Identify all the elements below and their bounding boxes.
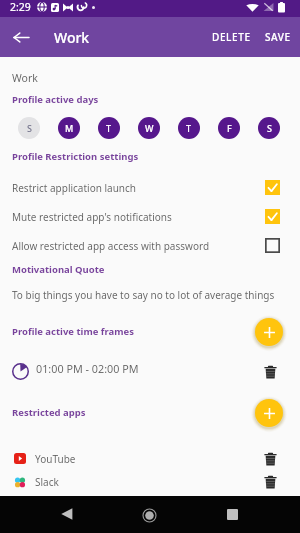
button[interactable]: SAVE xyxy=(258,20,300,54)
button[interactable]: DELETE xyxy=(205,20,258,54)
button[interactable]: S xyxy=(18,117,40,139)
button[interactable]: T xyxy=(178,117,200,139)
staticText: F xyxy=(227,122,232,134)
staticText: 01:00 PM - 02:00 PM xyxy=(36,361,139,376)
staticText: M xyxy=(65,122,74,134)
staticText: S xyxy=(27,122,32,134)
staticText: To big things you have to say no to lot … xyxy=(12,288,275,302)
button[interactable]: YouTube xyxy=(0,444,300,473)
button[interactable]: Add xyxy=(255,399,283,427)
staticText: Profile Restriction settings xyxy=(12,150,139,163)
staticText: Mute restricted app's notifications xyxy=(12,210,265,224)
button[interactable]: F xyxy=(218,117,240,139)
staticText: Restricted apps xyxy=(12,406,86,419)
button[interactable]: M xyxy=(58,117,80,139)
staticText: Profile active days xyxy=(12,93,99,106)
button[interactable]: Remove Slack xyxy=(259,473,281,490)
staticText: 2:29 xyxy=(10,0,31,14)
button[interactable]: Add xyxy=(255,318,283,346)
staticText: Allow restricted app access with passwor… xyxy=(12,239,265,253)
staticText: Motivational Quote xyxy=(12,263,105,276)
staticText: Work xyxy=(12,71,38,85)
staticText: SAVE xyxy=(265,30,291,44)
button[interactable]: Recent apps xyxy=(216,498,248,530)
button[interactable]: S xyxy=(258,117,280,139)
staticText: T xyxy=(106,122,112,134)
button[interactable]: W xyxy=(138,117,160,139)
button[interactable]: Back xyxy=(51,498,83,530)
button[interactable]: Mute restricted app's notifications xyxy=(0,202,300,231)
button[interactable]: Delete time frame xyxy=(259,361,281,383)
staticText: Profile active time frames xyxy=(12,325,134,338)
button[interactable]: T xyxy=(98,117,120,139)
staticText: YouTube xyxy=(35,452,76,466)
button[interactable]: Slack xyxy=(0,473,300,490)
button[interactable]: Back xyxy=(3,19,39,55)
button[interactable]: Home xyxy=(133,499,165,531)
staticText: DELETE xyxy=(212,30,251,44)
staticText: Restrict application launch xyxy=(12,181,265,195)
button[interactable]: Restrict application launch xyxy=(0,173,300,202)
staticText: S xyxy=(267,122,272,134)
staticText: Work xyxy=(54,28,90,47)
button[interactable]: 01:00 PM - 02:00 PM xyxy=(0,356,300,387)
button[interactable]: Remove YouTube xyxy=(259,448,281,470)
staticText: Slack xyxy=(35,475,59,489)
staticText: W xyxy=(145,122,154,134)
staticText: T xyxy=(186,122,192,134)
button[interactable]: Allow restricted app access with passwor… xyxy=(0,231,300,260)
